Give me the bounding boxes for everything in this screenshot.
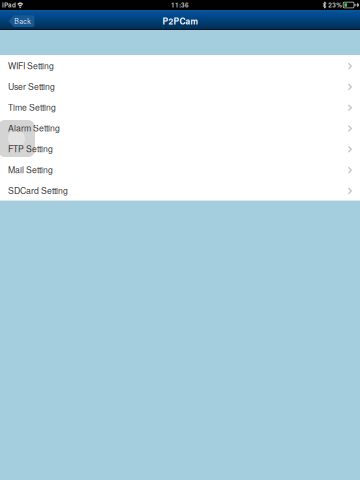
- staticText: User Setting: [8, 80, 55, 92]
- staticText: Alarm Setting: [8, 122, 60, 134]
- button[interactable]: Back: [9, 15, 34, 27]
- staticText: SDCard Setting: [8, 184, 68, 196]
- staticText: FTP Setting: [8, 142, 53, 155]
- button[interactable]: Time Setting: [0, 97, 360, 117]
- button[interactable]: WIFI Setting: [0, 55, 360, 76]
- button[interactable]: FTP Setting: [0, 138, 360, 159]
- staticText: 11:36: [171, 0, 189, 10]
- staticText: WIFI Setting: [8, 59, 54, 72]
- staticText: P2PCam: [162, 15, 197, 27]
- staticText: Time Setting: [8, 101, 56, 113]
- button[interactable]: Mail Setting: [0, 159, 360, 180]
- staticText: Mail Setting: [8, 163, 53, 176]
- staticText: iPad: [2, 0, 16, 10]
- button[interactable]: Alarm Setting: [0, 117, 360, 138]
- staticText: 23%: [328, 0, 342, 10]
- button[interactable]: User Setting: [0, 76, 360, 97]
- button[interactable]: SDCard Setting: [0, 180, 360, 201]
- staticText: Back: [14, 16, 30, 26]
